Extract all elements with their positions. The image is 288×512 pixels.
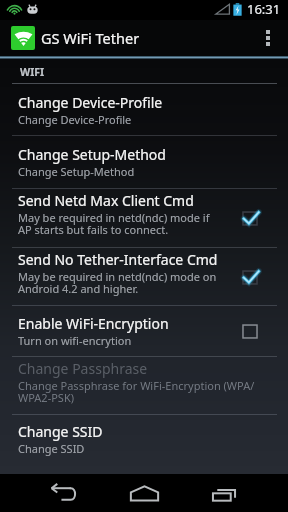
staticText: Change Device-Profile xyxy=(18,112,132,127)
button[interactable]: Home xyxy=(96,474,192,512)
staticText: WIFI xyxy=(20,65,45,79)
button[interactable]: Change SSID xyxy=(0,415,288,463)
button: Change Passphrase xyxy=(0,357,288,414)
staticText: Change Passphrase for WiFi-Encryption (W… xyxy=(18,378,255,405)
staticText: Change Device-Profile xyxy=(18,93,163,112)
staticText: Change Setup-Method xyxy=(18,164,135,179)
staticText: May be required in netd(ndc) mode on And… xyxy=(18,269,217,296)
button[interactable]: Checked xyxy=(234,201,266,235)
staticText: Send No Tether-Interface Cmd xyxy=(18,250,218,269)
button[interactable]: Change Device-Profile xyxy=(0,84,288,135)
staticText: GS WiFi Tether xyxy=(41,28,140,48)
staticText: Turn on wifi-encrytion xyxy=(18,333,132,348)
staticText: Change SSID xyxy=(18,422,103,441)
button[interactable]: Recent apps xyxy=(192,474,288,512)
staticText: Send Netd Max Client Cmd xyxy=(18,191,194,210)
staticText: May be required in netd(ndc) mode if AP … xyxy=(18,210,210,237)
button[interactable]: Send No Tether-Interface Cmd xyxy=(0,248,288,305)
button[interactable]: Unchecked xyxy=(234,314,266,348)
staticText: Change Setup-Method xyxy=(18,145,166,164)
button[interactable]: Back xyxy=(0,474,96,512)
button[interactable]: Enable WiFi-Encryption xyxy=(0,306,288,356)
staticText: Enable WiFi-Encryption xyxy=(18,314,169,333)
staticText: Change SSID xyxy=(18,441,85,456)
button[interactable]: More options xyxy=(252,20,284,56)
staticText: 16:31 xyxy=(247,0,281,18)
button[interactable]: Change Setup-Method xyxy=(0,136,288,188)
button[interactable]: Checked xyxy=(234,260,266,294)
button[interactable]: Send Netd Max Client Cmd xyxy=(0,189,288,247)
staticText: Change Passphrase xyxy=(18,359,148,378)
